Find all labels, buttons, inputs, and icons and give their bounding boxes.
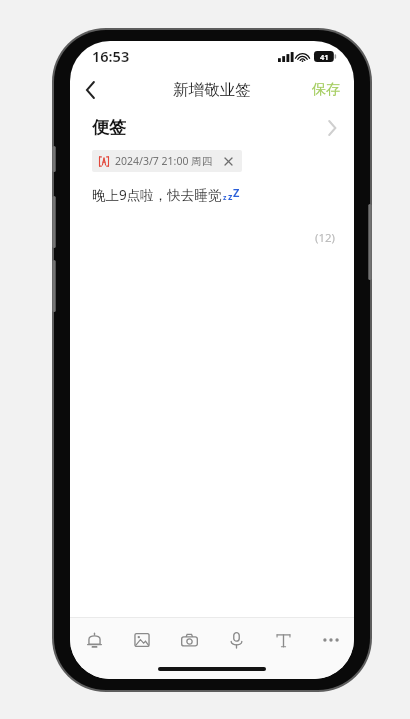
staticText: 16:53 — [92, 46, 130, 66]
staticText: 41 — [320, 52, 329, 62]
button[interactable]: Image — [118, 618, 166, 662]
staticText: 新增敬业签 — [173, 80, 251, 100]
staticText: 保存 — [312, 81, 340, 99]
button[interactable]: Camera — [166, 618, 213, 662]
staticText: 晚上9点啦，快去睡觉 — [92, 186, 222, 204]
staticText: 便签 — [92, 117, 126, 138]
staticText: Z — [233, 185, 240, 200]
button[interactable]: 保存 — [298, 75, 354, 105]
button[interactable]: Text format — [260, 618, 307, 662]
button[interactable]: Remove reminder — [221, 154, 235, 168]
button[interactable]: Reminder — [70, 618, 118, 662]
button[interactable]: Voice — [213, 618, 260, 662]
staticText: z — [228, 190, 233, 202]
staticText: (12) — [315, 230, 336, 246]
button[interactable]: Back — [70, 71, 110, 109]
button[interactable]: More — [307, 618, 354, 662]
button[interactable]: 便签 — [70, 109, 354, 140]
staticText: z — [223, 193, 227, 203]
staticText: 2024/3/7 21:00 周四 — [115, 154, 213, 168]
button[interactable]: 2024/3/7 21:00 周四 — [92, 150, 242, 172]
